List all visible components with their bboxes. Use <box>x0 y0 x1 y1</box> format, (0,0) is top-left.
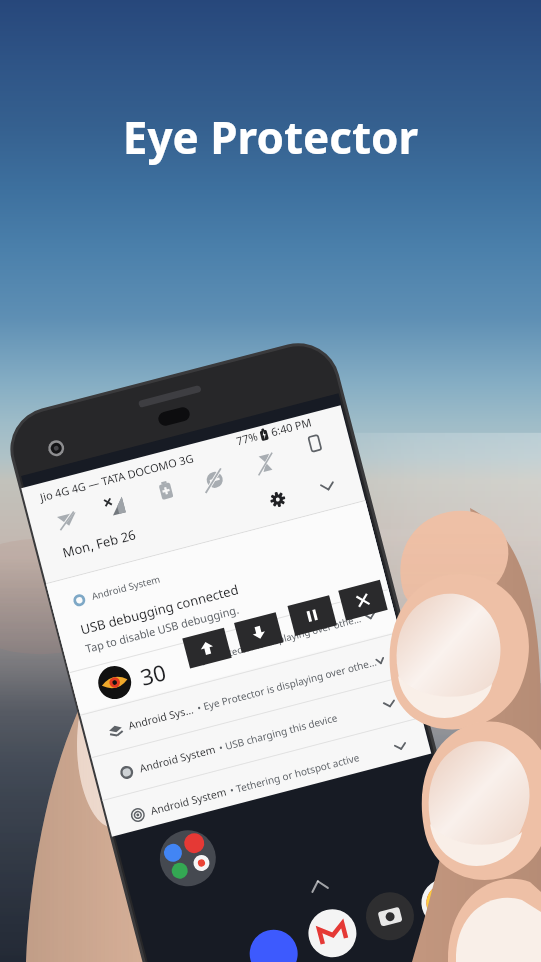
button[interactable]: 30 <box>69 590 400 716</box>
button[interactable]: Pause <box>287 595 337 636</box>
button[interactable]: Expand quick settings <box>320 480 335 493</box>
staticText: Android Sys… <box>127 702 195 733</box>
staticText: Android System <box>149 785 228 818</box>
button[interactable]: Wi-Fi off <box>55 505 79 530</box>
button[interactable]: Mobile signal <box>103 494 127 518</box>
button[interactable]: Android Sys… <box>104 638 390 752</box>
staticText: • USB charging this device <box>217 710 339 755</box>
button[interactable]: Android System <box>115 681 401 795</box>
button[interactable]: Android System <box>46 501 399 714</box>
button[interactable]: Close <box>338 580 388 621</box>
button[interactable]: Volume down <box>234 612 283 653</box>
staticText: Jio 4G 4G — TATA DOCOMO 3G <box>38 450 196 505</box>
button[interactable]: Battery saver <box>154 479 177 502</box>
button[interactable]: Auto rotate <box>306 434 324 452</box>
button[interactable]: Do not disturb <box>202 466 226 491</box>
button[interactable]: Cast screen <box>253 451 278 475</box>
staticText: Android System <box>90 572 162 603</box>
staticText: 30 <box>137 656 170 692</box>
staticText: 6:40 PM <box>269 414 314 439</box>
staticText: 77% <box>234 428 259 448</box>
button[interactable]: Android System <box>126 723 412 837</box>
staticText: Eye Protector <box>0 107 541 167</box>
staticText: Android System <box>138 742 217 775</box>
button[interactable]: Settings <box>269 490 287 509</box>
staticText: Mon, Feb 26 <box>61 525 138 562</box>
staticText: Tap to disable USB debugging. <box>84 602 240 656</box>
staticText: • Eye Protector is displaying over othe… <box>189 612 363 669</box>
button[interactable]: Volume up <box>182 628 232 668</box>
staticText: USB debugging connected <box>79 580 241 639</box>
staticText: • Eye Protector is displaying over othe… <box>195 655 378 715</box>
staticText: • Tethering or hotspot active <box>228 750 361 797</box>
